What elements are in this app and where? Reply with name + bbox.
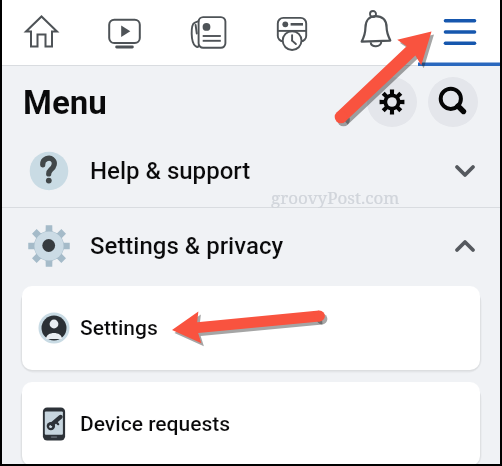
button[interactable]: Settings [367, 77, 417, 127]
button[interactable]: Marketplace [250, 0, 334, 66]
staticText: Settings [80, 316, 158, 341]
button[interactable]: News [166, 0, 250, 66]
button[interactable]: Help & support [0, 137, 502, 205]
button[interactable]: Device requests [22, 382, 480, 466]
staticText: Menu [23, 83, 107, 122]
button[interactable]: Watch [83, 0, 166, 66]
staticText: Device requests [80, 412, 231, 437]
staticText: Help & support [90, 157, 251, 185]
button[interactable]: Notifications [334, 0, 418, 66]
button[interactable]: Settings & privacy [0, 212, 502, 280]
button[interactable]: Menu [418, 0, 502, 66]
button[interactable]: Search [428, 77, 478, 127]
button[interactable]: Home [0, 0, 83, 66]
button[interactable]: Settings [22, 286, 480, 370]
staticText: Settings & privacy [90, 232, 284, 260]
staticText: groovyPost.com [271, 186, 400, 209]
